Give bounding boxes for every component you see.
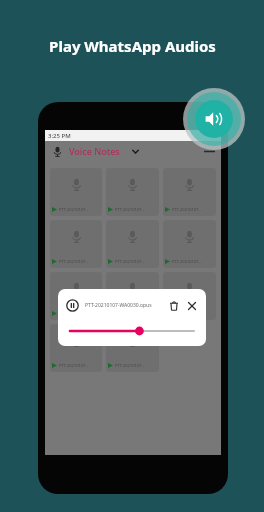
button[interactable]: PTT-20210107...	[50, 168, 102, 216]
staticText: Play WhatsApp Audios	[49, 36, 216, 56]
button[interactable]: PTT-20210107...	[163, 220, 216, 268]
button[interactable]: Close	[184, 298, 199, 313]
button[interactable]: PTT-20210107...	[106, 220, 159, 268]
button[interactable]: Seek	[70, 325, 194, 337]
button[interactable]: Play audio	[183, 88, 245, 150]
staticText: 3:25 PM	[48, 132, 71, 140]
button[interactable]: PTT-20210107...	[163, 168, 216, 216]
staticText: Voice Notes	[69, 145, 120, 157]
button[interactable]: PTT-20210107...	[106, 324, 159, 372]
button[interactable]: PTT-20210107...	[50, 272, 102, 320]
button[interactable]: Delete	[166, 298, 181, 313]
staticText: PTT-20210107...	[59, 207, 89, 212]
button[interactable]: Record	[49, 143, 65, 159]
staticText: PTT-20210107...	[59, 259, 89, 264]
staticText: PTT-20210107...	[115, 207, 145, 212]
button[interactable]: Pause	[65, 298, 80, 313]
staticText: PTT-20210107...	[115, 363, 145, 368]
button[interactable]: Menu	[201, 143, 217, 159]
button[interactable]: Expand	[128, 144, 142, 158]
staticText: PTT-20210107-WA0030.opus	[85, 302, 152, 309]
staticText: PTT-20210107...	[172, 259, 202, 264]
button[interactable]: PTT-20210107...	[163, 272, 216, 320]
staticText: PTT-20210107...	[115, 259, 145, 264]
staticText: PTT-20210107...	[59, 311, 89, 316]
staticText: PTT-20210107...	[59, 363, 89, 368]
button[interactable]: PTT-20210107...	[50, 220, 102, 268]
button[interactable]: PTT-20210107...	[50, 324, 102, 372]
button[interactable]: PTT-20210107...	[106, 272, 159, 320]
staticText: PTT-20210107...	[172, 207, 202, 212]
button[interactable]: PTT-20210107...	[106, 168, 159, 216]
